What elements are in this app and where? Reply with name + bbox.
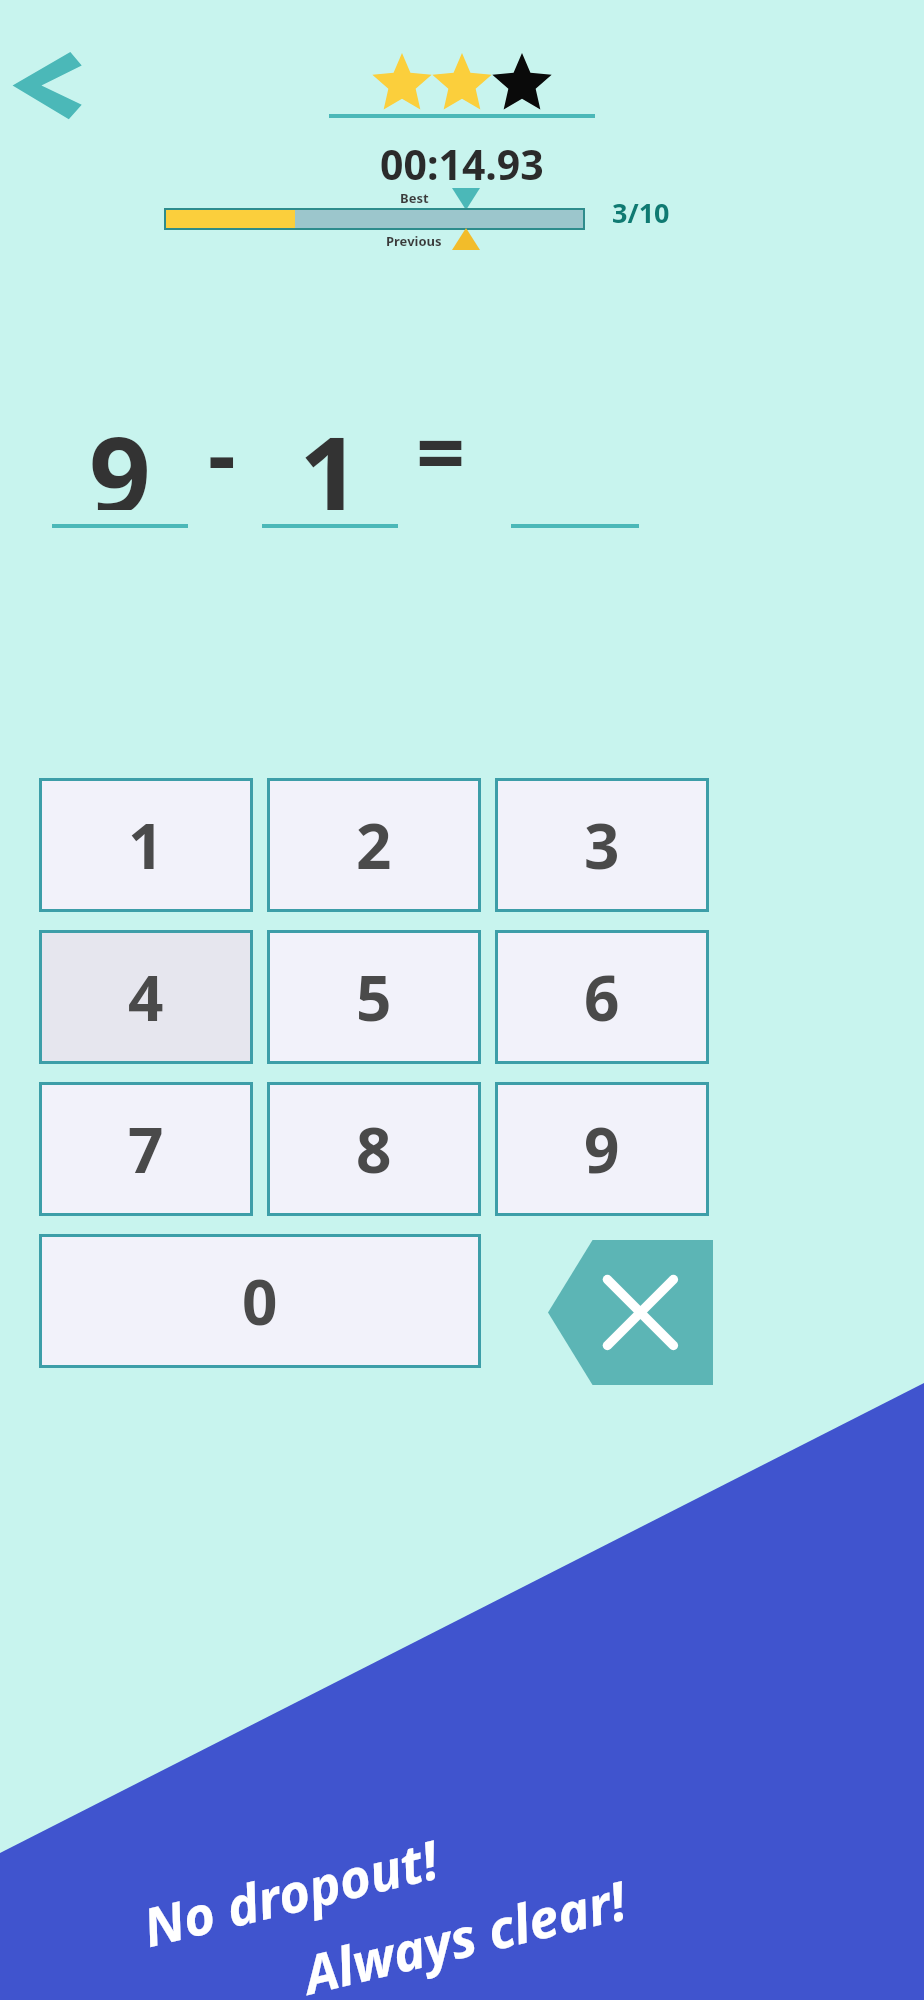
staticText: 8 <box>356 1107 392 1191</box>
button[interactable]: 5 <box>267 930 481 1064</box>
staticText: Always clear! <box>296 1863 633 2000</box>
staticText: - <box>208 394 236 511</box>
staticText: Previous <box>386 232 442 250</box>
staticText: 1 <box>128 803 164 887</box>
staticText: 3/10 <box>612 194 670 231</box>
button[interactable]: 8 <box>267 1082 481 1216</box>
staticText: Best <box>400 189 429 207</box>
button[interactable]: 2 <box>267 778 481 912</box>
staticText: 9 <box>89 400 151 510</box>
staticText: 6 <box>584 955 620 1039</box>
button[interactable]: 3 <box>495 778 709 912</box>
staticText: 2 <box>356 803 392 887</box>
button[interactable]: 7 <box>39 1082 253 1216</box>
staticText: 1 <box>299 400 361 510</box>
staticText: No dropout! <box>136 1822 445 1962</box>
staticText: 5 <box>356 955 392 1039</box>
button[interactable]: Back <box>8 44 84 124</box>
button[interactable]: 1 <box>39 778 253 912</box>
button[interactable]: 0 <box>39 1234 481 1368</box>
staticText: 7 <box>128 1107 164 1191</box>
staticText: 3 <box>584 803 620 887</box>
staticText: 00:14.93 <box>380 136 544 192</box>
staticText: 0 <box>242 1259 278 1343</box>
button[interactable]: 6 <box>495 930 709 1064</box>
staticText: 9 <box>584 1107 620 1191</box>
staticText: = <box>416 392 466 509</box>
button[interactable]: 9 <box>495 1082 709 1216</box>
button[interactable]: Delete <box>548 1240 713 1385</box>
staticText: 4 <box>128 955 164 1039</box>
button[interactable]: 4 <box>39 930 253 1064</box>
